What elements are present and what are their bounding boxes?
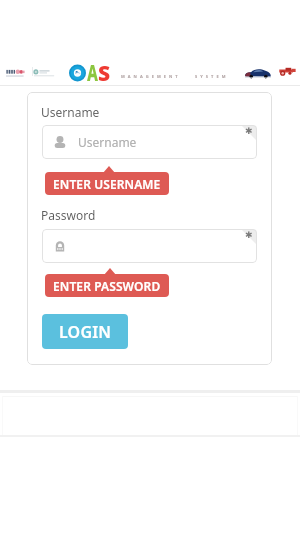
- staticText: ENTER PASSWORD: [53, 278, 161, 294]
- staticText: ✱: [245, 126, 253, 136]
- staticText: Username: [78, 134, 137, 150]
- button[interactable]: LOGIN: [42, 314, 128, 349]
- button[interactable]: ✱: [42, 229, 257, 263]
- button[interactable]: ENTER PASSWORD: [45, 274, 169, 297]
- staticText: Password: [41, 207, 96, 223]
- button[interactable]: ENTER USERNAME: [45, 172, 169, 195]
- staticText: S: [98, 59, 111, 88]
- button[interactable]: Username: [42, 125, 257, 159]
- staticText: LOGIN: [59, 321, 112, 343]
- staticText: ✱: [245, 230, 253, 240]
- staticText: M A N A G E M E N T: [121, 74, 179, 79]
- staticText: S Y S T E M: [195, 74, 227, 79]
- staticText: Username: [41, 104, 100, 120]
- staticText: ENTER USERNAME: [53, 176, 161, 192]
